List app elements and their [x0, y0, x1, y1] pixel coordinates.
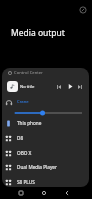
button[interactable]: Home: [39, 188, 49, 198]
staticText: Crane: [17, 99, 29, 105]
button[interactable]: Volume: [14, 110, 82, 116]
button[interactable]: Play: [65, 81, 76, 92]
staticText: S8 PLUS: [17, 179, 35, 185]
button[interactable]: Next: [75, 82, 85, 92]
button[interactable]: Do not disturb: [79, 6, 87, 14]
staticText: No title: [20, 84, 35, 90]
button[interactable]: This phone: [2, 116, 89, 131]
button[interactable]: D8: [2, 131, 89, 146]
button[interactable]: Dual Media Player: [2, 160, 89, 175]
staticText: Dual Media Player: [17, 164, 57, 170]
button[interactable]: Control Center: [6, 69, 40, 78]
button[interactable]: Recents: [16, 188, 26, 198]
staticText: This phone: [17, 120, 42, 126]
staticText: OBO X: [17, 150, 32, 156]
button[interactable]: S8 PLUS: [2, 175, 89, 187]
button[interactable]: Previous: [54, 82, 64, 92]
button[interactable]: OBO X: [2, 146, 89, 161]
staticText: Media output: [11, 27, 65, 39]
staticText: Control Center: [14, 70, 43, 76]
button[interactable]: Back: [62, 188, 72, 198]
staticText: D8: [17, 135, 24, 141]
